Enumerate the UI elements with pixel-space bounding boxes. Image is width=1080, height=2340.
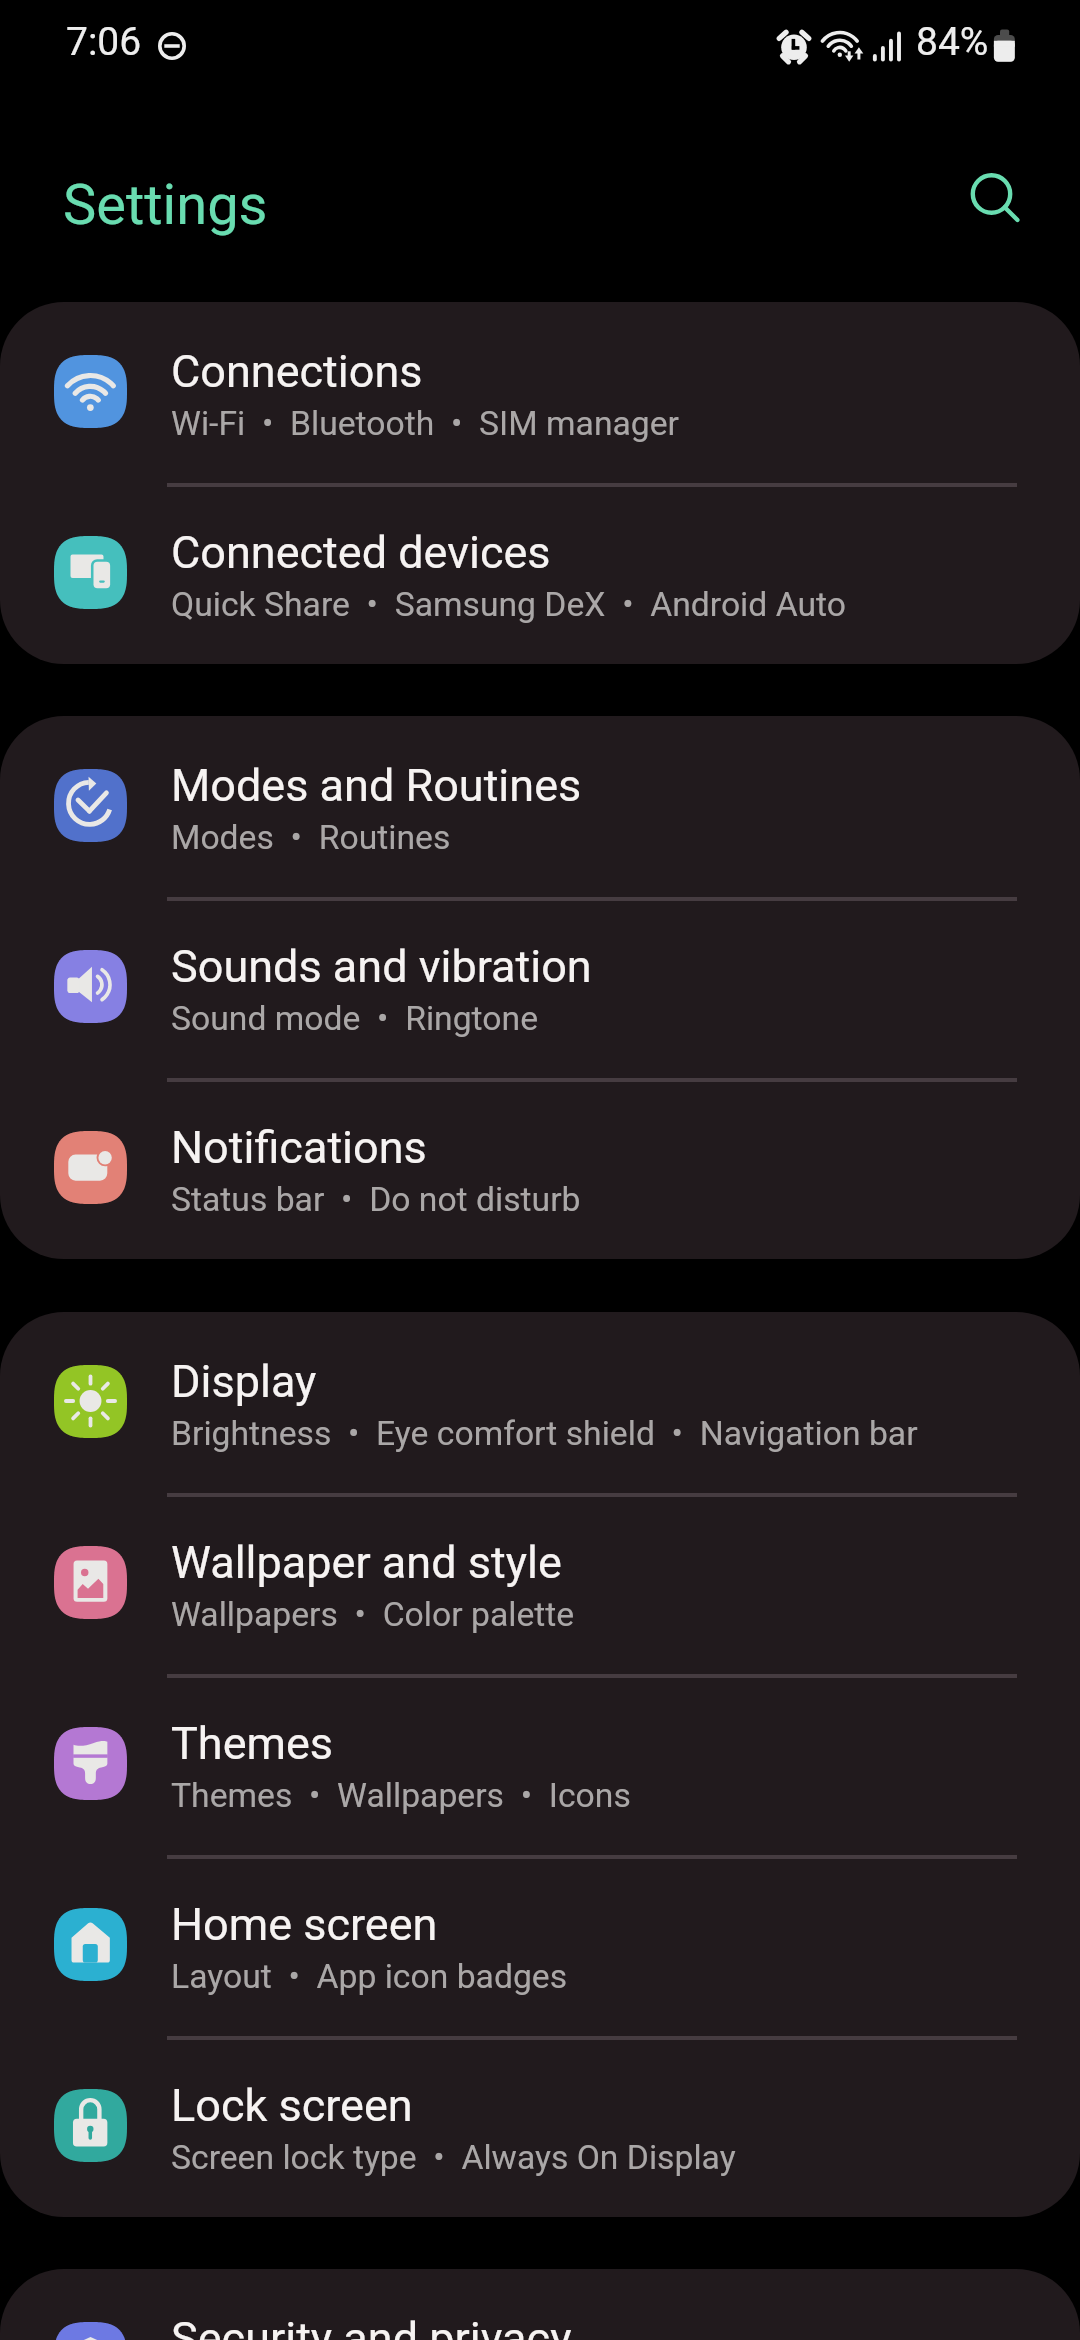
button[interactable]: Wallpaper and style bbox=[0, 1493, 1080, 1674]
staticText: Settings bbox=[63, 172, 268, 238]
staticText: Connected devices bbox=[171, 526, 551, 579]
button[interactable]: Sounds and vibration bbox=[0, 897, 1080, 1078]
staticText: Connections bbox=[171, 345, 423, 398]
staticText: 7:06 bbox=[66, 19, 142, 65]
staticText: Wi-Fi • Bluetooth • SIM manager bbox=[171, 404, 680, 443]
button[interactable]: Search bbox=[945, 147, 1039, 241]
staticText: Display bbox=[171, 1355, 317, 1408]
staticText: Wallpaper and style bbox=[171, 1536, 562, 1589]
button[interactable]: Security and privacy bbox=[0, 2269, 1080, 2340]
staticText: Sounds and vibration bbox=[171, 940, 592, 993]
staticText: Quick Share • Samsung DeX • Android Auto bbox=[171, 585, 846, 624]
button[interactable]: Connections bbox=[0, 302, 1080, 483]
staticText: Wallpapers • Color palette bbox=[171, 1595, 575, 1634]
staticText: Status bar • Do not disturb bbox=[171, 1180, 581, 1219]
button[interactable]: Lock screen bbox=[0, 2036, 1080, 2217]
staticText: Modes • Routines bbox=[171, 818, 451, 857]
staticText: Sound mode • Ringtone bbox=[171, 999, 538, 1038]
staticText: Brightness • Eye comfort shield • Naviga… bbox=[171, 1414, 918, 1453]
staticText: Themes • Wallpapers • Icons bbox=[171, 1776, 631, 1815]
button[interactable]: Modes and Routines bbox=[0, 716, 1080, 897]
staticText: Lock screen bbox=[171, 2079, 413, 2132]
button[interactable]: Notifications bbox=[0, 1078, 1080, 1259]
staticText: Themes bbox=[171, 1717, 334, 1770]
button[interactable]: Themes bbox=[0, 1674, 1080, 1855]
staticText: Home screen bbox=[171, 1898, 438, 1951]
staticText: Layout • App icon badges bbox=[171, 1957, 568, 1996]
button[interactable]: Connected devices bbox=[0, 483, 1080, 664]
staticText: 84% bbox=[916, 19, 989, 65]
staticText: Modes and Routines bbox=[171, 759, 582, 812]
button[interactable]: Home screen bbox=[0, 1855, 1080, 2036]
button[interactable]: Display bbox=[0, 1312, 1080, 1493]
staticText: Security and privacy bbox=[171, 2312, 572, 2340]
staticText: Screen lock type • Always On Display bbox=[171, 2138, 736, 2177]
staticText: Notifications bbox=[171, 1121, 427, 1174]
